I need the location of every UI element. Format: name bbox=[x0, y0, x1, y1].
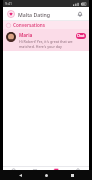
button[interactable]: Recents bbox=[66, 170, 78, 180]
button[interactable]: Profile bbox=[67, 167, 89, 180]
button[interactable]: Home bbox=[40, 170, 52, 180]
staticText: Maria bbox=[19, 32, 33, 38]
button[interactable]: Matches bbox=[24, 167, 45, 180]
staticText: Conversations bbox=[13, 22, 46, 28]
button[interactable]: Back bbox=[14, 170, 26, 180]
button[interactable]: Malta Dating logo bbox=[7, 10, 15, 18]
staticText: Chat bbox=[77, 34, 85, 38]
staticText: 9:41 bbox=[5, 1, 12, 6]
button[interactable]: Conversations bbox=[45, 167, 67, 180]
staticText: Hi Robert! Yes, it's great that we match… bbox=[19, 39, 74, 49]
staticText: Conversations bbox=[46, 175, 67, 179]
button[interactable]: Notifications bbox=[75, 9, 85, 19]
staticText: Discover bbox=[8, 175, 20, 179]
button[interactable]: Open chat bbox=[76, 33, 86, 39]
button[interactable]: Maria bbox=[3, 29, 89, 51]
staticText: Malta Dating bbox=[18, 11, 51, 18]
button[interactable]: Discover bbox=[3, 167, 24, 180]
